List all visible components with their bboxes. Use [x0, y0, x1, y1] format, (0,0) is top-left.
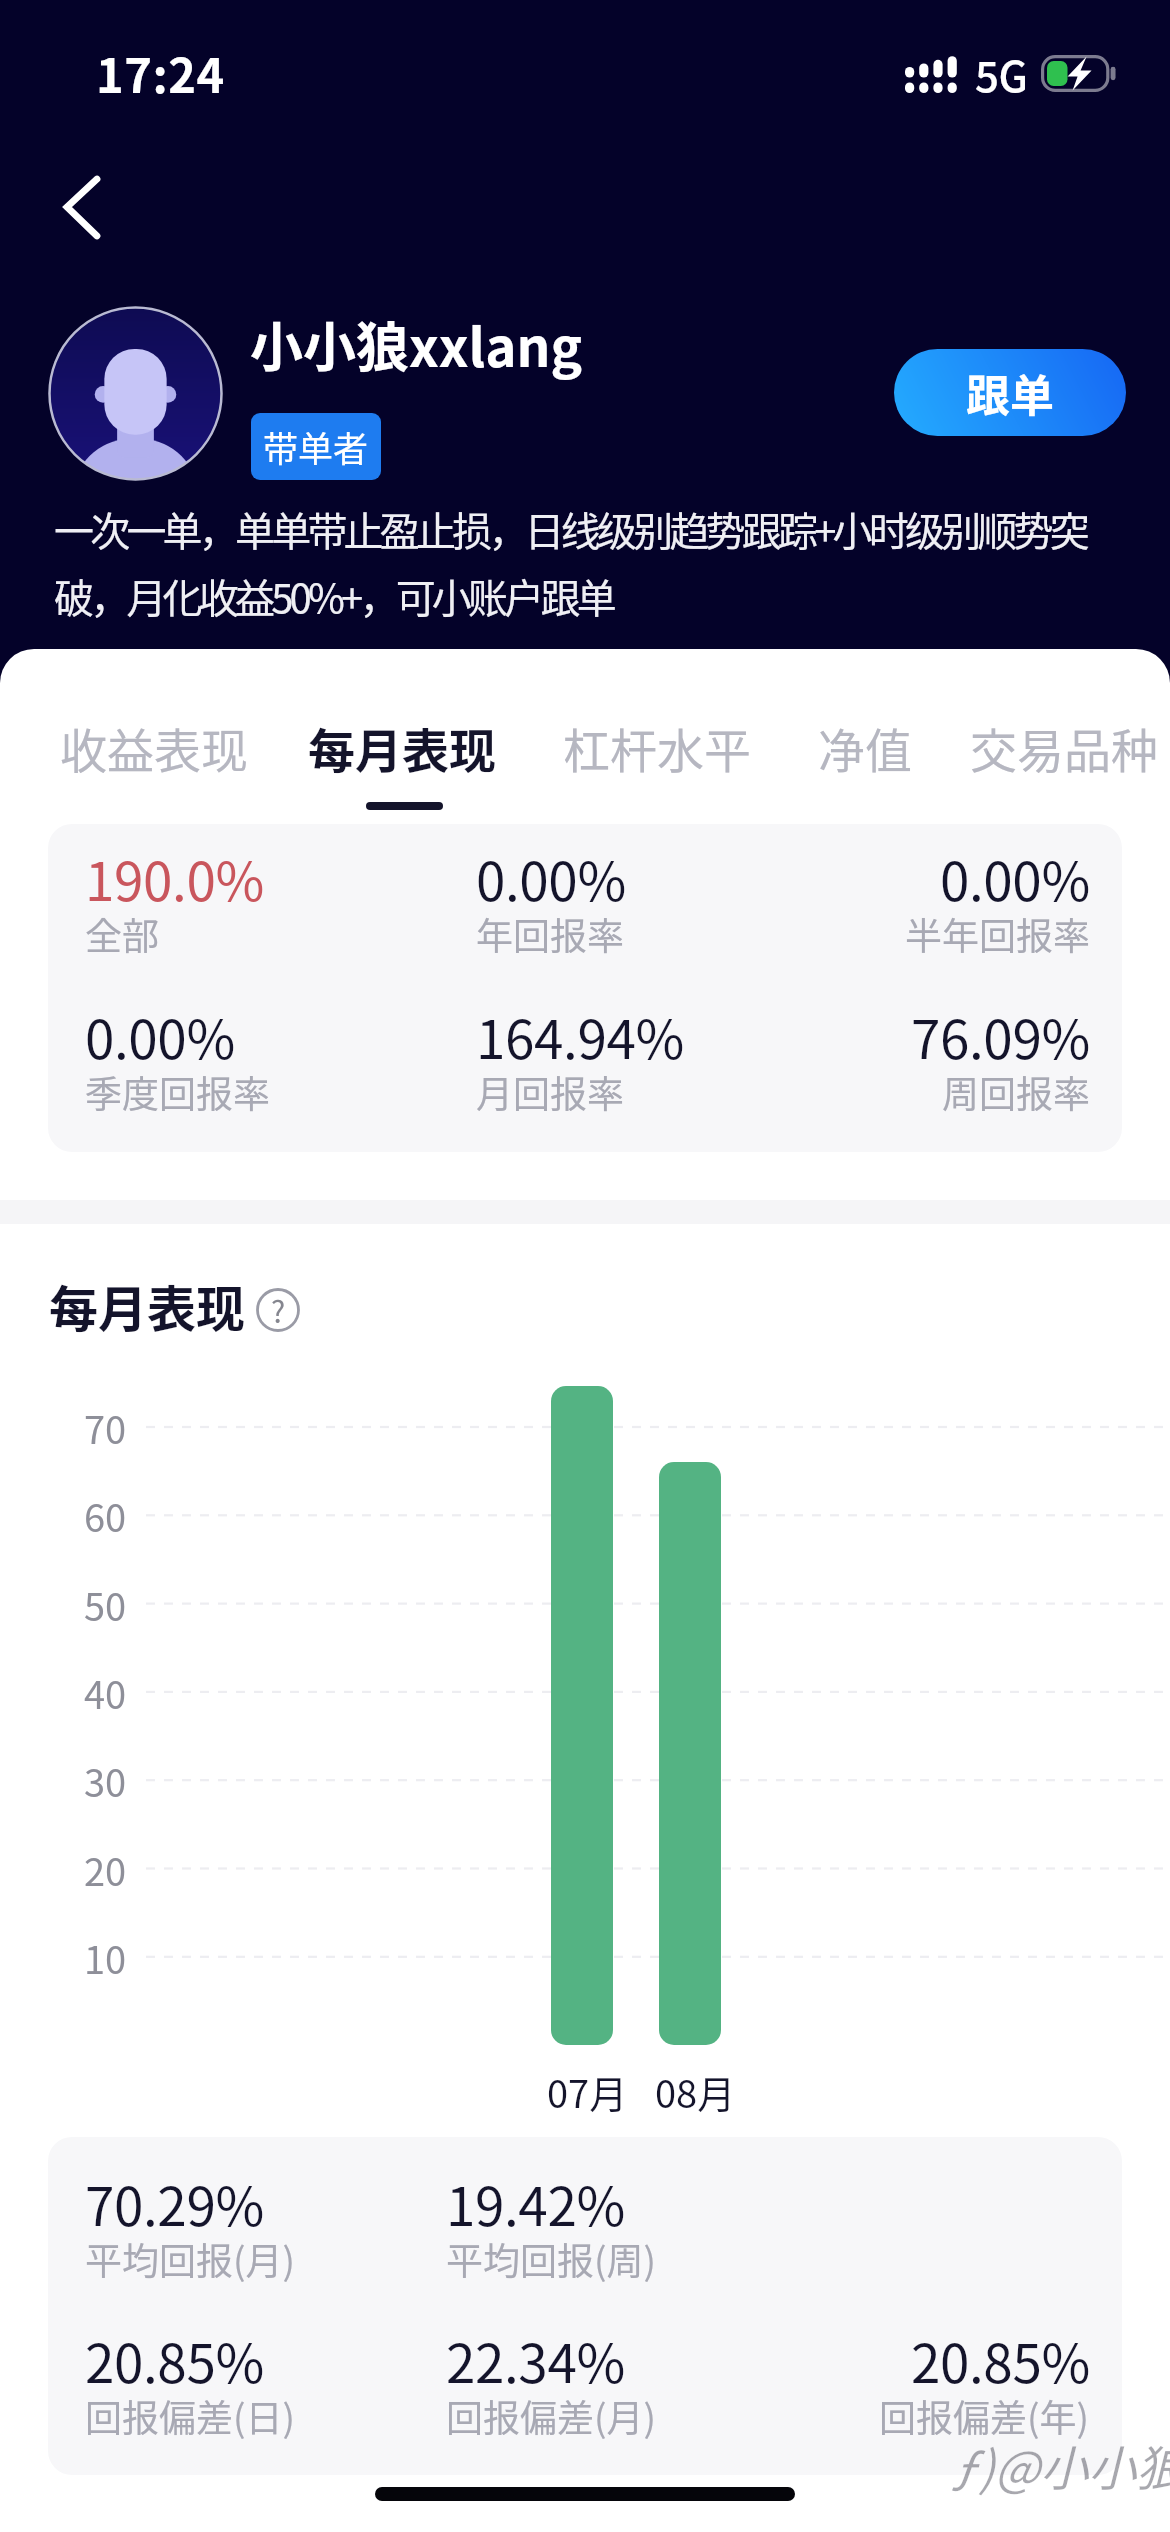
staticText: 19.42%: [446, 2165, 625, 2242]
staticText: 164.94%: [476, 998, 684, 1075]
staticText: 07月: [547, 2064, 628, 2119]
button[interactable]: 净值: [798, 713, 932, 833]
staticText: ƒ)@小小狼: [952, 2430, 1170, 2500]
staticText: 70.29%: [85, 2165, 264, 2242]
staticText: 小小狼xxlang: [250, 306, 583, 383]
staticText: 全部: [85, 907, 159, 961]
staticText: 22.34%: [446, 2322, 625, 2399]
staticText: 50: [84, 1577, 144, 1632]
button[interactable]: 带单者: [251, 413, 381, 480]
staticText: ?: [271, 1288, 286, 1331]
button[interactable]: 杠杆水平: [543, 713, 771, 833]
staticText: 一次一单，单单带止盈止损，日线级别趋势跟踪+小时级别顺势突破，月化收益50%+，…: [54, 500, 1114, 624]
staticText: 76.09%: [911, 998, 1090, 1075]
staticText: 杠杆水平: [563, 713, 751, 781]
staticText: 0.00%: [476, 840, 626, 917]
staticText: 回报偏差(月): [446, 2389, 657, 2443]
staticText: 10: [84, 1930, 144, 1985]
staticText: 回报偏差(日): [85, 2389, 296, 2443]
staticText: 0.00%: [940, 840, 1090, 917]
staticText: 0.00%: [85, 998, 235, 1075]
staticText: 70: [84, 1400, 144, 1455]
staticText: 17:24: [96, 38, 225, 106]
button[interactable]: Help: [256, 1288, 300, 1332]
button[interactable]: 收益表现: [40, 713, 268, 833]
staticText: 平均回报(月): [85, 2232, 296, 2286]
staticText: 每月表现: [308, 713, 496, 781]
staticText: 20: [84, 1842, 144, 1897]
staticText: 回报偏差(年): [879, 2389, 1090, 2443]
staticText: 20.85%: [911, 2322, 1090, 2399]
button[interactable]: 每月表现: [288, 713, 516, 833]
staticText: 带单者: [263, 421, 369, 472]
button[interactable]: 交易品种: [950, 713, 1170, 833]
button[interactable]: Back: [34, 152, 134, 262]
staticText: 年回报率: [476, 907, 624, 961]
staticText: 30: [84, 1753, 144, 1808]
staticText: 40: [84, 1665, 144, 1720]
staticText: 季度回报率: [85, 1065, 270, 1119]
staticText: 半年回报率: [905, 907, 1090, 961]
staticText: 190.0%: [85, 840, 264, 917]
staticText: 60: [84, 1488, 144, 1543]
staticText: 20.85%: [85, 2322, 264, 2399]
staticText: 周回报率: [942, 1065, 1090, 1119]
staticText: 月回报率: [476, 1065, 624, 1119]
staticText: 跟单: [966, 361, 1054, 425]
staticText: 08月: [655, 2064, 736, 2119]
staticText: 净值: [818, 713, 912, 781]
staticText: 每月表现: [49, 1270, 246, 1341]
button[interactable]: 跟单: [894, 349, 1126, 436]
staticText: 平均回报(周): [446, 2232, 657, 2286]
staticText: 收益表现: [60, 713, 248, 781]
staticText: 5G: [975, 43, 1028, 104]
staticText: 交易品种: [970, 713, 1158, 781]
